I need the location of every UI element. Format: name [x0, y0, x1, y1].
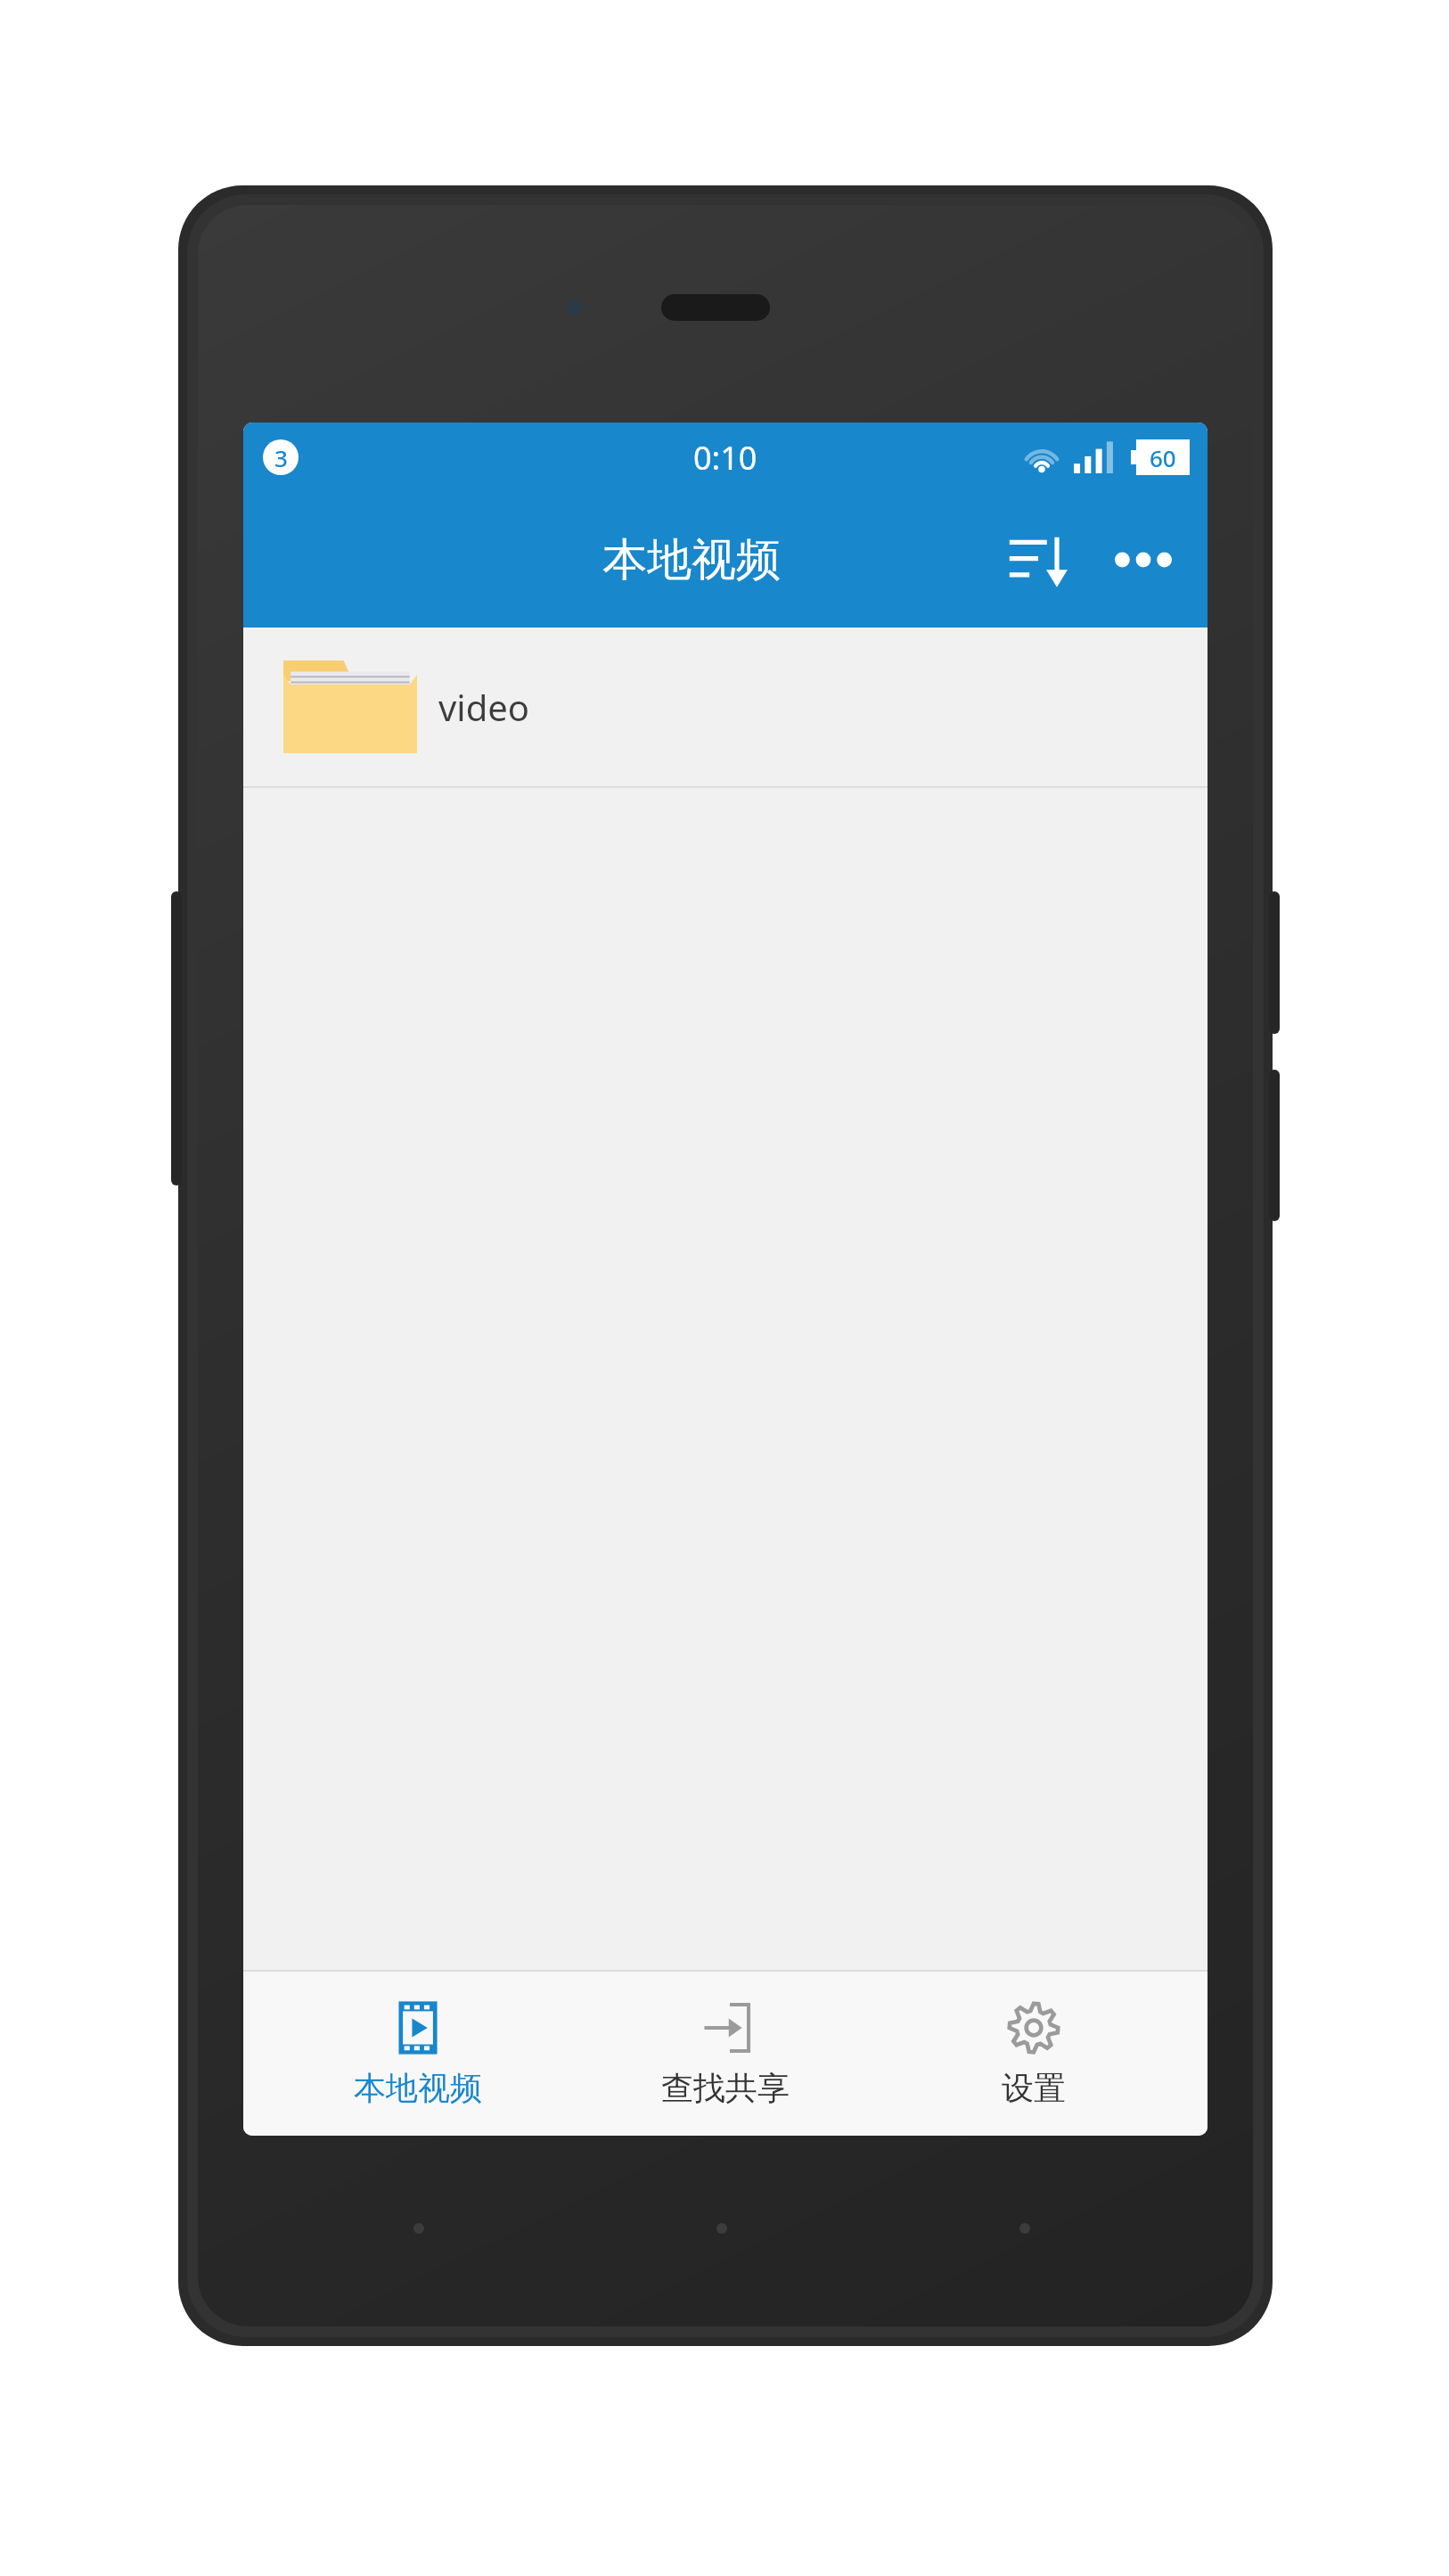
- staticText: 本地视频: [602, 532, 781, 588]
- staticText: 60: [1150, 442, 1176, 473]
- button[interactable]: video: [243, 628, 1207, 786]
- staticText: 查找共享: [661, 2068, 790, 2108]
- staticText: 本地视频: [354, 2068, 482, 2108]
- button[interactable]: More options: [1104, 521, 1183, 599]
- button[interactable]: 查找共享: [592, 1991, 859, 2117]
- staticText: 0:10: [693, 436, 757, 480]
- button[interactable]: 本地视频: [284, 1991, 552, 2117]
- button[interactable]: 设置: [900, 1991, 1167, 2117]
- staticText: 3: [274, 442, 288, 473]
- button[interactable]: Sort: [995, 517, 1081, 603]
- staticText: video: [438, 683, 529, 731]
- staticText: 设置: [1002, 2068, 1066, 2108]
